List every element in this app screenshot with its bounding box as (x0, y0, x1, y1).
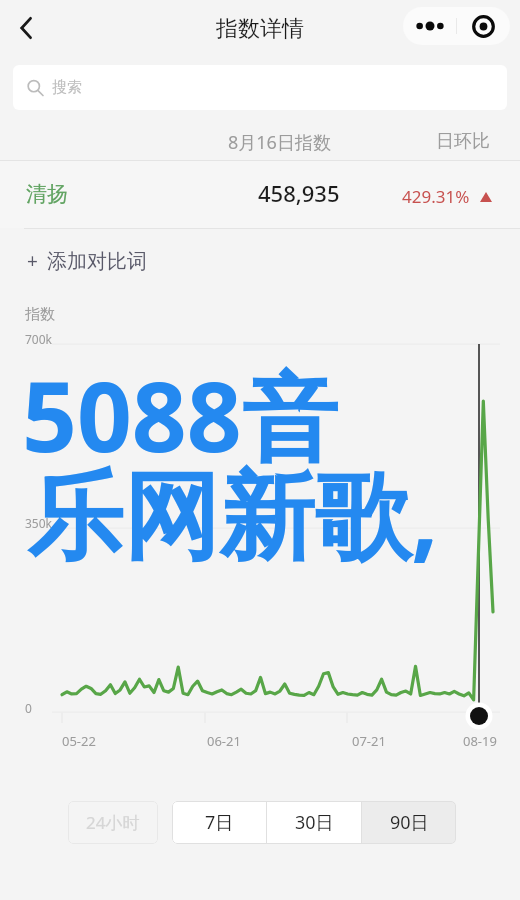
button[interactable]: 搜索 (13, 65, 507, 110)
button[interactable]: 24小时 (68, 801, 158, 844)
button[interactable]: 30日 (267, 801, 361, 844)
staticText: + (27, 248, 38, 274)
staticText: 乐网新歌, (27, 447, 439, 578)
button[interactable]: Close mini program (457, 7, 510, 45)
staticText: 458,935 (258, 178, 340, 208)
staticText: 7日 (205, 810, 234, 835)
staticText: 700k (25, 331, 53, 347)
staticText: 06-21 (207, 732, 241, 750)
button[interactable]: 7日 (172, 801, 266, 844)
staticText: 添加对比词 (47, 249, 147, 274)
staticText: 5088音 (22, 349, 338, 480)
staticText: 90日 (390, 810, 429, 835)
button[interactable]: Back (3, 4, 51, 52)
button[interactable] (0, 161, 520, 228)
staticText: 07-21 (352, 732, 386, 750)
button[interactable]: + (0, 233, 520, 289)
staticText: 429.31% (402, 185, 470, 208)
staticText: 指数详情 (216, 15, 304, 43)
staticText: 08-19 (463, 732, 497, 750)
staticText: 搜索 (52, 78, 82, 97)
staticText: 8月16日指数 (228, 130, 331, 155)
staticText: 日环比 (436, 130, 490, 153)
staticText: 05-22 (62, 732, 96, 750)
staticText: 24小时 (86, 811, 140, 834)
staticText: 30日 (295, 810, 334, 835)
button[interactable]: More (403, 7, 456, 45)
staticText: 清扬 (26, 181, 68, 207)
staticText: 指数 (25, 305, 55, 324)
button[interactable]: 90日 (362, 801, 456, 844)
staticText: 350k (25, 515, 53, 531)
staticText: 0 (25, 700, 32, 716)
